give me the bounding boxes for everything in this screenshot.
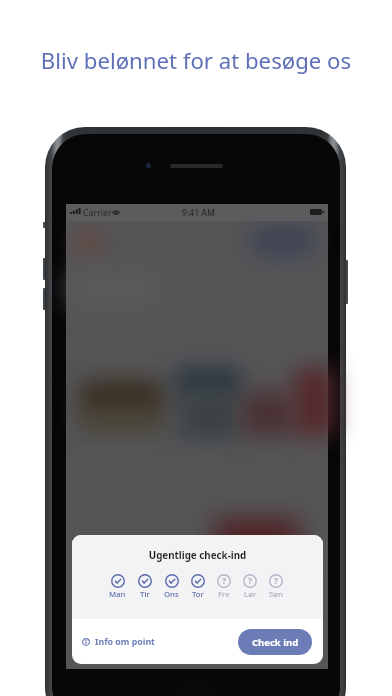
button[interactable]: Ons	[164, 574, 179, 600]
staticText: ?	[248, 575, 253, 587]
staticText: Bliv belønnet for at besøge os	[0, 45, 392, 75]
staticText: Ons	[164, 589, 179, 600]
staticText: Lør	[244, 589, 257, 600]
button[interactable]: ?	[217, 574, 231, 600]
button[interactable]: Tor	[191, 574, 205, 600]
button[interactable]: Check ind	[238, 629, 312, 655]
staticText: 9:41 AM	[182, 207, 215, 219]
button[interactable]: ?	[243, 574, 257, 600]
staticText: Søn	[269, 589, 283, 600]
staticText: Carrier	[83, 207, 112, 219]
staticText: Tir	[140, 589, 150, 600]
staticText: ?	[222, 575, 227, 587]
staticText: Info om point	[95, 636, 155, 648]
staticText: Tor	[192, 589, 204, 600]
staticText: ?	[274, 575, 279, 587]
staticText: Man	[109, 589, 126, 600]
button[interactable]: Tir	[138, 574, 152, 600]
button[interactable]: ?	[269, 574, 283, 600]
staticText: Check ind	[252, 636, 299, 649]
staticText: Fre	[218, 589, 230, 600]
staticText: Ugentlige check-ind	[72, 549, 323, 562]
button[interactable]: Man	[109, 574, 126, 600]
button[interactable]: Info om point	[82, 636, 155, 648]
